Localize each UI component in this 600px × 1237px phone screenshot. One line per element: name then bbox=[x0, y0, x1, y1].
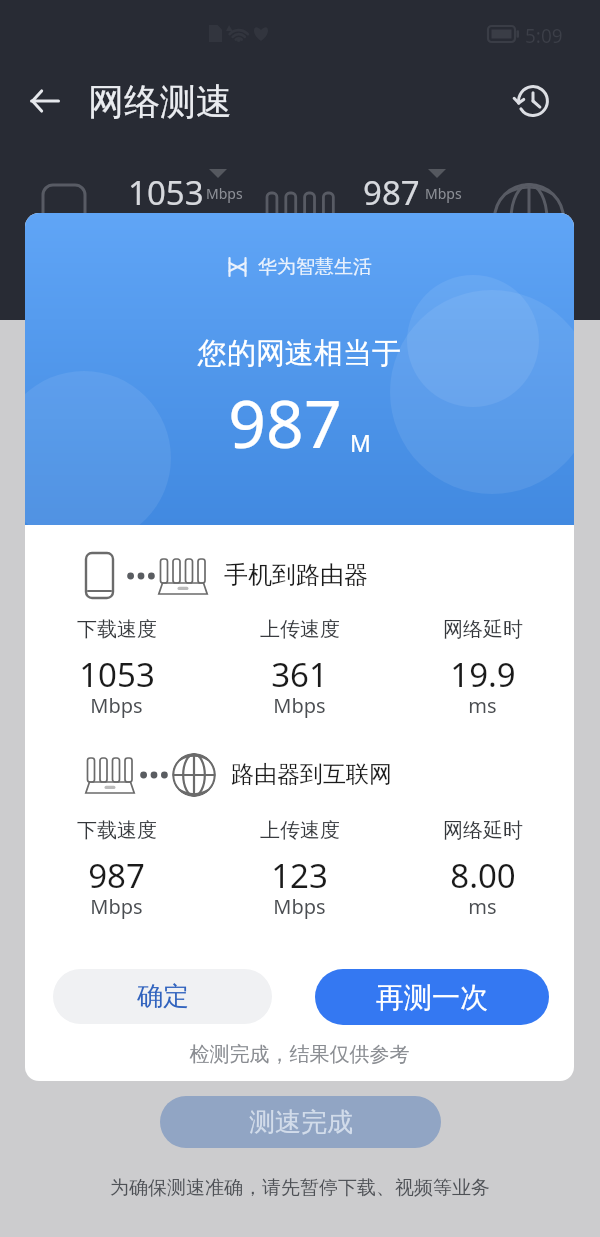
staticText: 下载速度 bbox=[77, 818, 157, 843]
staticText: Mbps bbox=[425, 184, 462, 203]
button[interactable]: History bbox=[508, 76, 558, 126]
staticText: 网络延时 bbox=[443, 617, 523, 642]
button[interactable]: Back bbox=[22, 78, 67, 123]
staticText: 19.9 bbox=[450, 652, 516, 697]
staticText: 361 bbox=[271, 652, 328, 697]
staticText: 再测一次 bbox=[376, 980, 488, 1015]
button[interactable]: 再测一次 bbox=[315, 969, 549, 1025]
staticText: 网络测速 bbox=[88, 79, 232, 124]
button[interactable]: 测速完成 bbox=[160, 1096, 441, 1148]
staticText: Mbps bbox=[206, 184, 243, 203]
staticText: ms bbox=[468, 692, 497, 719]
staticText: 测速完成 bbox=[249, 1106, 353, 1139]
staticText: 上传速度 bbox=[260, 818, 340, 843]
staticText: 8.00 bbox=[450, 853, 516, 898]
staticText: M bbox=[350, 427, 371, 458]
staticText: 123 bbox=[271, 853, 328, 898]
staticText: ms bbox=[468, 893, 497, 920]
staticText: 手机到路由器 bbox=[224, 560, 368, 590]
staticText: 上传速度 bbox=[260, 617, 340, 642]
staticText: 为确保测速准确，请先暂停下载、视频等业务 bbox=[0, 1176, 600, 1200]
staticText: 网络延时 bbox=[443, 818, 523, 843]
staticText: 1053 bbox=[79, 652, 155, 697]
staticText: 1053 bbox=[128, 170, 204, 215]
staticText: Mbps bbox=[90, 893, 143, 920]
staticText: Mbps bbox=[273, 692, 326, 719]
staticText: 华为智慧生活 bbox=[258, 255, 372, 279]
staticText: 下载速度 bbox=[77, 617, 157, 642]
staticText: 检测完成，结果仅供参考 bbox=[25, 1042, 574, 1067]
staticText: 路由器到互联网 bbox=[231, 760, 392, 789]
staticText: 5:09 bbox=[525, 23, 563, 49]
staticText: 确定 bbox=[137, 980, 189, 1013]
staticText: 987 bbox=[228, 377, 342, 467]
staticText: Mbps bbox=[90, 692, 143, 719]
button[interactable]: 确定 bbox=[53, 969, 272, 1024]
staticText: 987 bbox=[88, 853, 145, 898]
staticText: 您的网速相当于 bbox=[198, 335, 401, 372]
staticText: Mbps bbox=[273, 893, 326, 920]
staticText: 987 bbox=[363, 170, 420, 215]
